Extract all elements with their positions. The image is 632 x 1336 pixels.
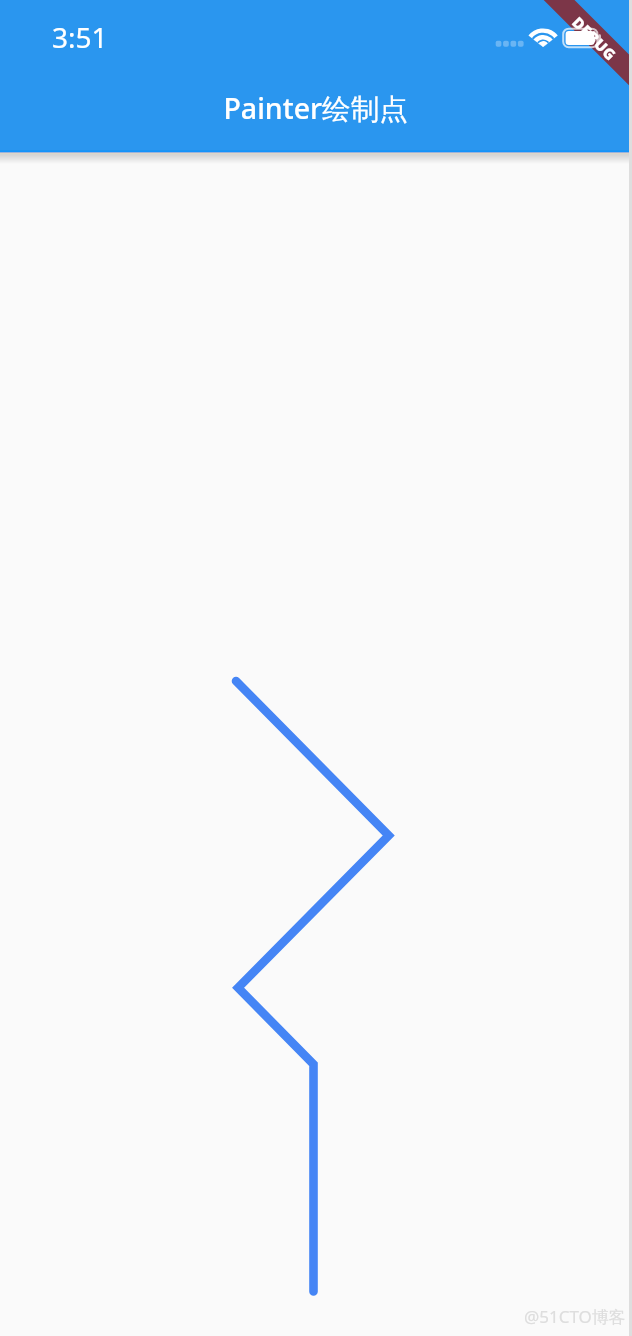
button[interactable]: Signal, Wi-Fi and battery status [498,22,598,50]
staticText: 3:51 [52,18,108,56]
staticText: @51CTO博客 [524,1305,626,1328]
staticText: Painter绘制点 [223,89,408,128]
other: Zig-zag polyline drawn with Painter [0,0,632,1336]
other: DEBUG banner [532,0,632,100]
